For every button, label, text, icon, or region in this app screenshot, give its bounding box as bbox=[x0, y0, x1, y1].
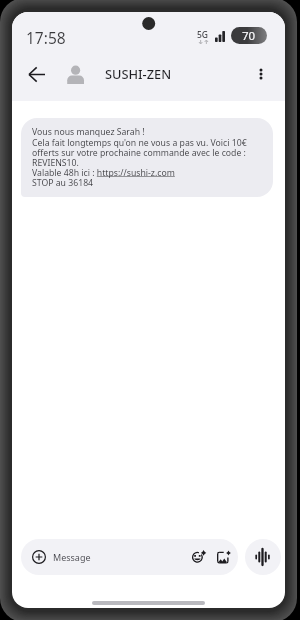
staticText: Message bbox=[53, 551, 91, 563]
button[interactable]: Add attachment bbox=[21, 539, 238, 575]
staticText: 5G bbox=[197, 29, 209, 41]
staticText: 70 bbox=[242, 28, 256, 44]
staticText: 17:58 bbox=[26, 27, 66, 48]
button[interactable]: SUSHI-ZEN bbox=[105, 65, 172, 82]
button[interactable]: Vous nous manquez Sarah ! Cela fait long… bbox=[21, 118, 273, 197]
staticText: Vous nous manquez Sarah ! Cela fait long… bbox=[32, 126, 247, 189]
button[interactable]: More options bbox=[245, 58, 277, 90]
button[interactable]: Back bbox=[17, 55, 56, 94]
button[interactable]: Add attachment bbox=[26, 544, 52, 570]
button[interactable]: Attach image bbox=[213, 546, 235, 568]
button[interactable]: Emoji bbox=[188, 546, 210, 568]
button[interactable]: Voice message bbox=[245, 539, 281, 575]
